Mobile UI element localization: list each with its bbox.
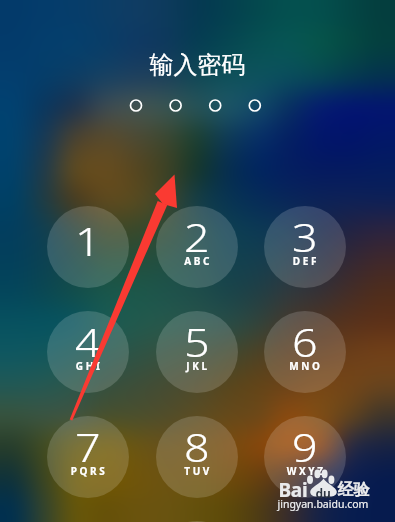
button[interactable]: Digit 6 [264, 311, 346, 393]
button[interactable]: Digit 7 [47, 416, 129, 498]
button[interactable]: Digit 5 [156, 311, 238, 393]
button[interactable]: Digit 4 [47, 311, 129, 393]
button[interactable]: Digit 2 [156, 206, 238, 288]
button[interactable]: Digit 1 [47, 206, 129, 288]
button[interactable]: Digit 3 [264, 206, 346, 288]
button[interactable]: Digit 0 [156, 521, 238, 522]
button[interactable]: Digit 9 [264, 416, 346, 498]
button[interactable]: Digit 8 [156, 416, 238, 498]
